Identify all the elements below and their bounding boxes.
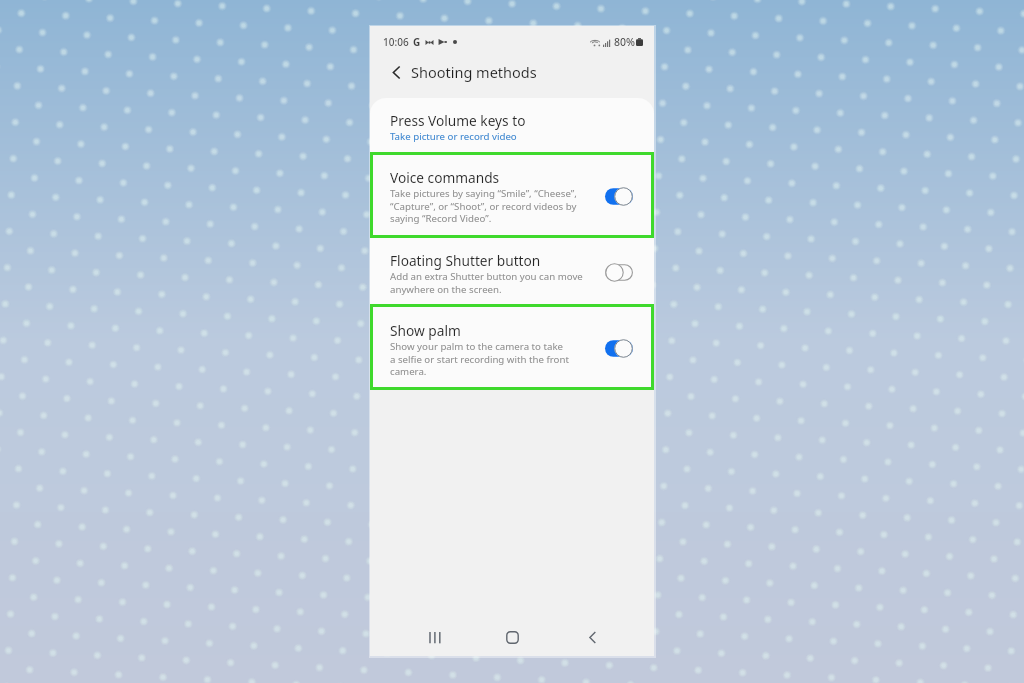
button[interactable]: Toggle on (605, 339, 633, 358)
staticText: Show palm (390, 321, 461, 340)
staticText: 80% (614, 35, 635, 49)
button[interactable]: Back (575, 620, 609, 654)
button[interactable]: Press Volume keys to (370, 98, 654, 152)
staticText: Shooting methods (411, 62, 537, 82)
staticText: Press Volume keys to (390, 111, 526, 130)
button[interactable]: Voice commands (370, 152, 654, 238)
staticText: Take picture or record video (390, 130, 517, 143)
staticText: Add an extra Shutter button you can move… (390, 270, 583, 296)
button[interactable]: Navigate up (383, 59, 409, 85)
button[interactable]: Show palm (370, 304, 654, 390)
button[interactable]: Floating Shutter button (370, 238, 654, 304)
staticText: G (413, 35, 421, 49)
staticText: 10:06 (383, 35, 409, 49)
button[interactable]: Toggle on (605, 187, 633, 206)
button[interactable]: Home (495, 620, 529, 654)
staticText: Show your palm to the camera to take a s… (390, 340, 569, 378)
button[interactable]: Toggle off (605, 263, 633, 282)
staticText: Voice commands (390, 168, 500, 187)
staticText: Take pictures by saying “Smile”, “Cheese… (390, 187, 577, 225)
staticText: Floating Shutter button (390, 251, 541, 270)
button[interactable]: Recent apps (416, 620, 450, 654)
